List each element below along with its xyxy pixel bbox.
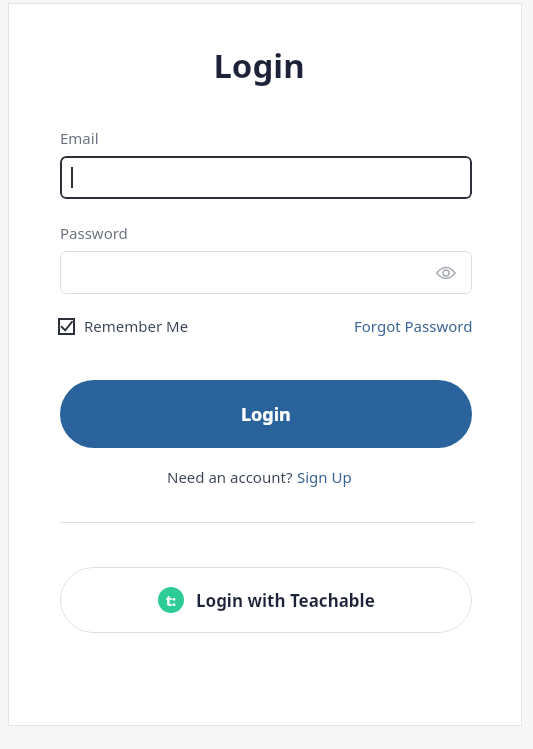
button[interactable]: t: [60, 567, 472, 633]
button[interactable]: Remember Me [58, 316, 189, 336]
staticText: Sign Up [297, 467, 352, 487]
staticText: Email [60, 128, 99, 148]
staticText: Need an account? [167, 467, 297, 487]
staticText: Password [60, 223, 128, 243]
button[interactable]: Login [60, 380, 472, 448]
staticText: Login [241, 402, 291, 427]
button[interactable] [60, 156, 472, 199]
staticText: t: [166, 591, 177, 610]
button[interactable]: Show password [60, 251, 472, 294]
staticText: Forgot Password [354, 316, 473, 336]
staticText: Login [2, 43, 516, 88]
staticText: Remember Me [84, 316, 189, 336]
staticText: Login with Teachable [196, 589, 375, 612]
button[interactable]: Show password [433, 260, 459, 286]
button[interactable]: Sign Up [297, 467, 352, 487]
button[interactable]: Forgot Password [354, 316, 473, 336]
